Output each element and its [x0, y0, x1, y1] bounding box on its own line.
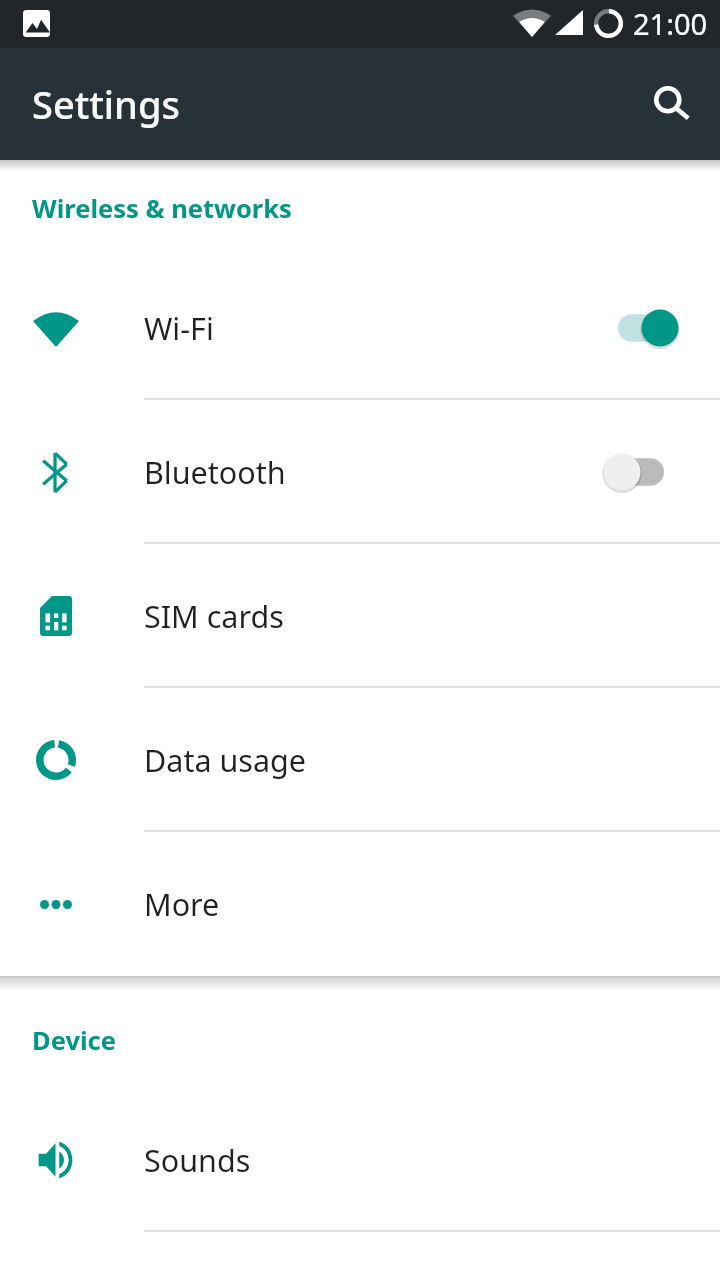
staticText: Wi-Fi [144, 307, 214, 349]
staticText: Sounds [144, 1139, 251, 1181]
staticText: Wireless & networks [32, 191, 292, 226]
staticText: 21:00 [633, 4, 708, 43]
button[interactable]: Wi-Fi [0, 256, 720, 400]
staticText: More [144, 883, 220, 925]
button[interactable]: Search [624, 56, 720, 152]
button[interactable]: Data usage [0, 688, 720, 832]
button[interactable]: Sounds [0, 1088, 720, 1232]
button[interactable]: More [0, 832, 720, 976]
staticText: Settings [32, 78, 180, 130]
staticText: Device [32, 1023, 116, 1058]
button[interactable]: SIM cards [0, 544, 720, 688]
button[interactable]: On [606, 280, 702, 376]
button[interactable]: Bluetooth [0, 400, 720, 544]
staticText: SIM cards [144, 595, 284, 637]
staticText: Bluetooth [144, 451, 286, 493]
button[interactable]: Off [606, 424, 702, 520]
staticText: Data usage [144, 739, 306, 781]
